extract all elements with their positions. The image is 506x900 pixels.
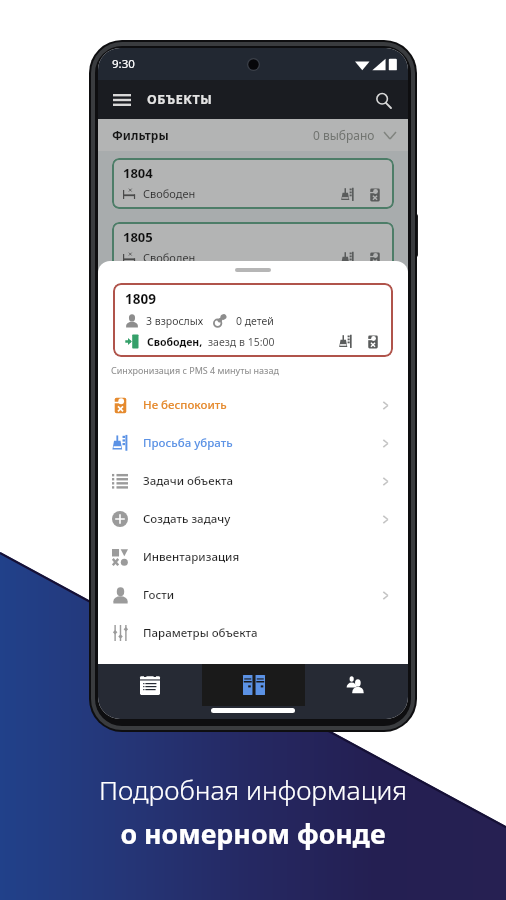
button[interactable]: Menu (106, 84, 138, 116)
button[interactable]: Гости (98, 576, 408, 614)
staticText: Гости (143, 587, 175, 603)
staticText: 1805 (123, 228, 153, 246)
staticText: 3 взрослых (146, 314, 204, 328)
staticText: Создать задачу (143, 511, 231, 527)
staticText: Свободен (143, 250, 196, 265)
button[interactable]: Задачи объекта (98, 462, 408, 500)
staticText: о номерном фонде (120, 815, 386, 852)
staticText: 0 выбрано (313, 127, 375, 143)
button[interactable]: 1804 (112, 158, 394, 209)
staticText: Не беспокоить (143, 397, 227, 413)
button[interactable]: Guests (305, 664, 408, 706)
staticText: 0 детей (236, 314, 274, 328)
staticText: ОБЪЕКТЫ (147, 91, 213, 108)
button[interactable]: Параметры объекта (98, 614, 408, 652)
button[interactable]: Не беспокоить (98, 386, 408, 424)
button[interactable]: Search (368, 85, 398, 115)
staticText: 1809 (125, 290, 156, 308)
button[interactable]: Просьба убрать (98, 424, 408, 462)
staticText: Фильтры (112, 127, 169, 143)
staticText: Просьба убрать (143, 435, 233, 451)
staticText: 9:30 (112, 56, 135, 72)
staticText: Синхронизация с PMS 4 минуты назад (111, 364, 279, 376)
staticText: Подробная информация (99, 772, 407, 808)
staticText: Инвентаризация (143, 549, 240, 565)
staticText: Свободен (143, 186, 196, 201)
button[interactable]: Инвентаризация (98, 538, 408, 576)
button[interactable]: 0 выбрано (313, 127, 396, 143)
button[interactable]: 1805 (112, 222, 394, 273)
button[interactable]: 1809 (113, 283, 393, 357)
staticText: Свободен, (147, 335, 203, 349)
button[interactable]: Rooms (202, 664, 305, 706)
staticText: Задачи объекта (143, 473, 234, 489)
staticText: заезд в 15:00 (208, 335, 275, 349)
button[interactable]: Tasks (98, 664, 202, 706)
button[interactable]: Создать задачу (98, 500, 408, 538)
staticText: 1804 (123, 164, 153, 182)
staticText: Параметры объекта (143, 625, 258, 641)
